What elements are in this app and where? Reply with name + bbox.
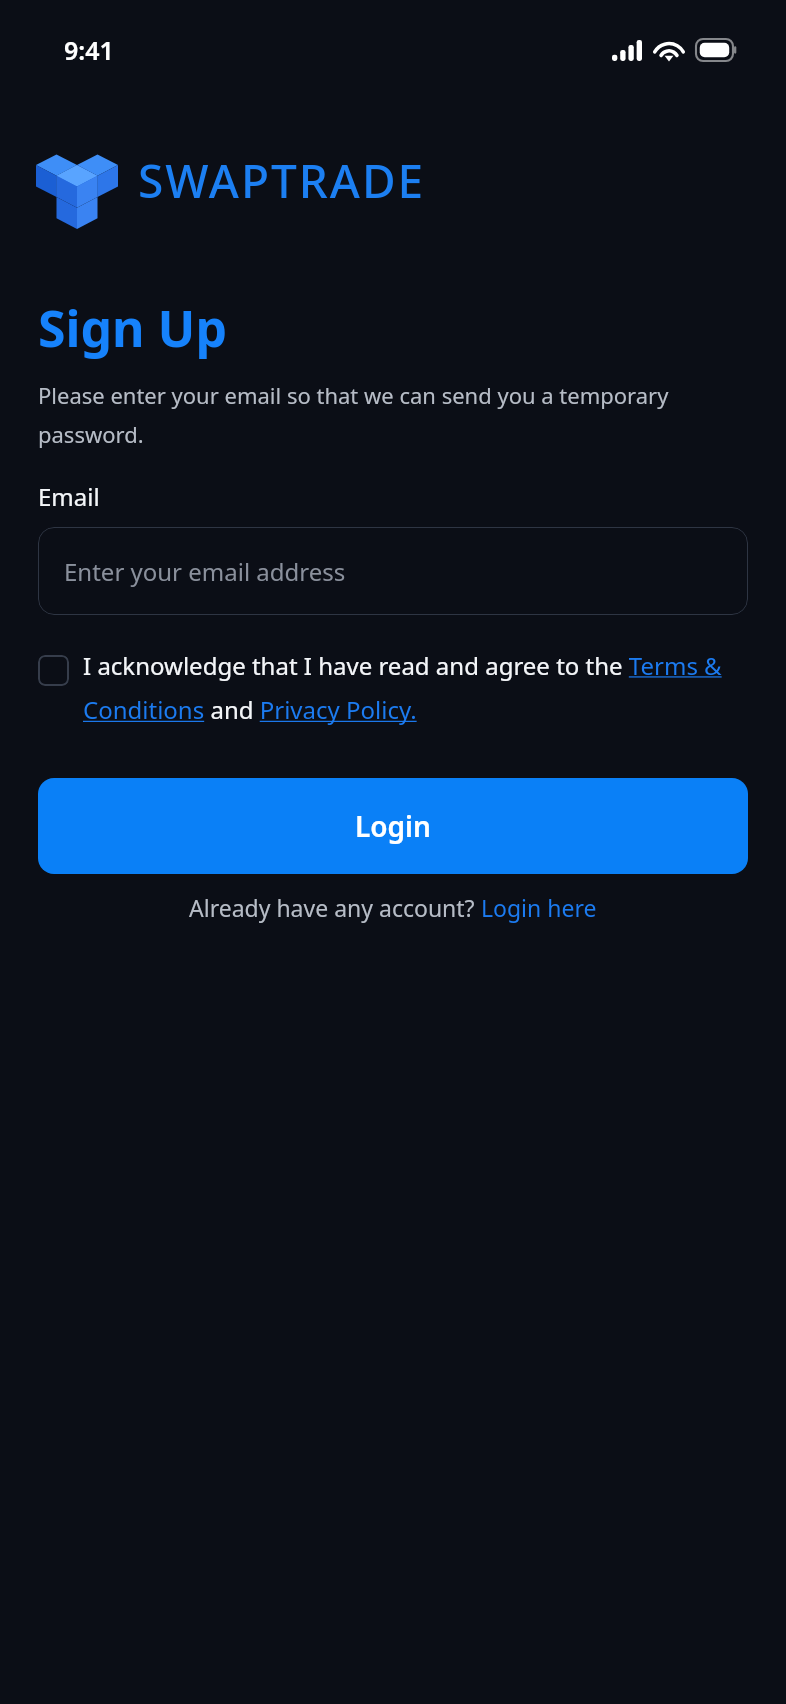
staticText: Already have any account? [189, 892, 481, 923]
staticText: SWAPTRADE [138, 149, 426, 212]
staticText: Sign Up [38, 294, 227, 362]
staticText: Enter your email address [64, 555, 346, 588]
button[interactable]: Enter your email address [38, 527, 748, 615]
staticText: Login [355, 807, 431, 845]
staticText: Email [38, 480, 100, 513]
staticText: 9:41 [64, 33, 114, 67]
button[interactable]: I acknowledge that I have read and agree… [83, 649, 752, 726]
button[interactable]: Login here [481, 892, 597, 923]
button[interactable]: Login [38, 778, 748, 874]
button[interactable]: Acknowledge terms and conditions [38, 655, 69, 686]
staticText: Please enter your email so that we can s… [38, 380, 678, 450]
